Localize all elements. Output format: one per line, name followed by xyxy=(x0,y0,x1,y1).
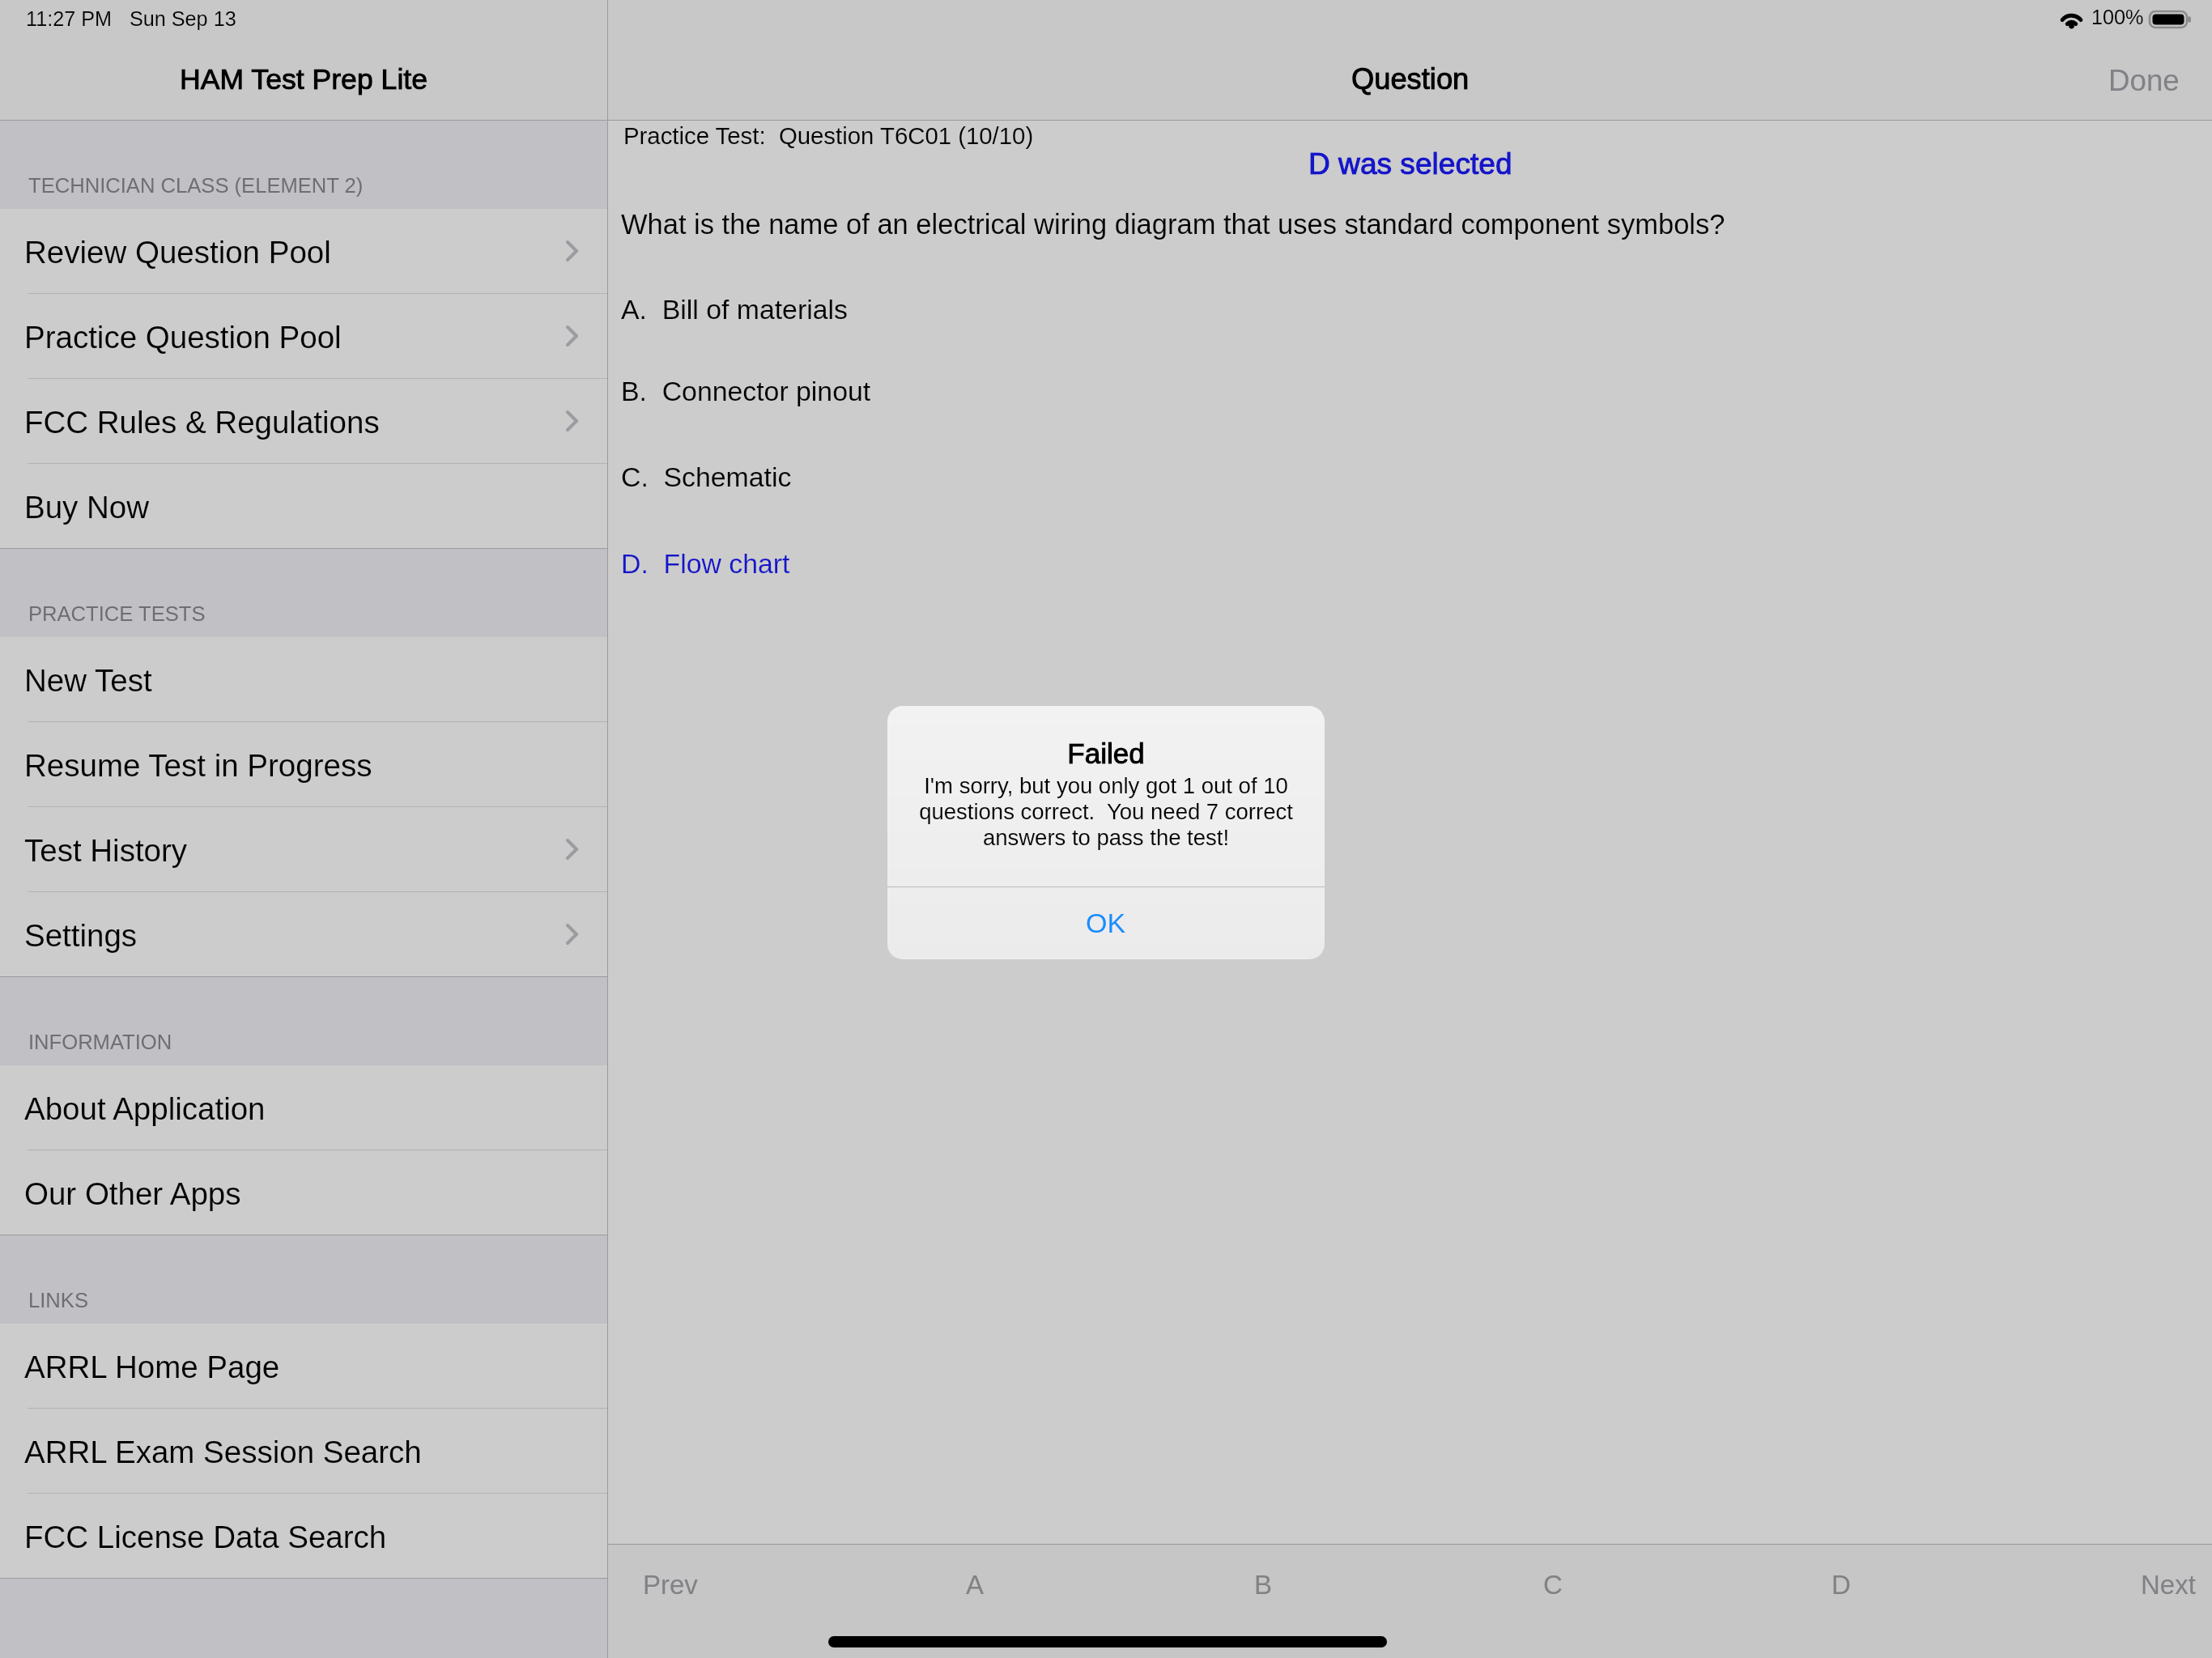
staticText: Prev xyxy=(643,1570,698,1600)
staticText: TECHNICIAN CLASS (ELEMENT 2) xyxy=(28,174,364,198)
staticText: Buy Now xyxy=(24,490,150,525)
button[interactable]: FCC License Data Search xyxy=(0,1494,607,1578)
staticText: About Application xyxy=(24,1091,266,1126)
staticText: I'm sorry, but you only got 1 out of 10 … xyxy=(905,773,1307,849)
staticText: A. Bill of materials xyxy=(621,294,848,325)
button[interactable]: C. Schematic xyxy=(608,460,805,494)
staticText: 100% xyxy=(2091,6,2144,28)
button[interactable]: Settings xyxy=(0,892,607,976)
button[interactable]: Practice Question Pool xyxy=(0,294,607,378)
staticText: B. Connector pinout xyxy=(621,376,871,406)
button[interactable]: Buy Now xyxy=(0,464,607,548)
staticText: FCC Rules & Regulations xyxy=(24,405,380,440)
button[interactable]: B. Connector pinout xyxy=(608,374,884,408)
button[interactable]: About Application xyxy=(0,1065,607,1150)
staticText: C xyxy=(1543,1570,1563,1600)
staticText: ARRL Home Page xyxy=(24,1350,280,1384)
staticText: What is the name of an electrical wiring… xyxy=(621,209,1725,240)
button[interactable]: D. Flow chart xyxy=(608,546,803,580)
button[interactable]: A xyxy=(948,1554,1002,1616)
staticText: Resume Test in Progress xyxy=(24,748,372,783)
button[interactable]: New Test xyxy=(0,637,607,721)
staticText: Practice Test: Question T6C01 (10/10) xyxy=(623,122,1034,149)
staticText: Settings xyxy=(24,918,138,953)
staticText: D was selected xyxy=(1308,147,1512,180)
staticText: PRACTICE TESTS xyxy=(28,602,206,626)
button[interactable]: Done xyxy=(2081,54,2212,107)
button[interactable]: B xyxy=(1236,1554,1291,1616)
button[interactable]: A. Bill of materials xyxy=(608,292,861,326)
other: Battery xyxy=(2149,11,2192,28)
button[interactable]: C xyxy=(1525,1554,1580,1616)
staticText: OK xyxy=(1086,908,1126,938)
staticText: C. Schematic xyxy=(621,461,792,492)
staticText: New Test xyxy=(24,663,152,698)
button[interactable]: OK xyxy=(887,886,1325,959)
button[interactable]: Our Other Apps xyxy=(0,1150,607,1235)
staticText: INFORMATION xyxy=(28,1031,172,1054)
staticText: FCC License Data Search xyxy=(24,1520,387,1554)
button[interactable]: FCC Rules & Regulations xyxy=(0,379,607,463)
staticText: Failed xyxy=(1067,738,1145,769)
staticText: Our Other Apps xyxy=(24,1176,241,1211)
staticText: Done xyxy=(2108,64,2180,97)
button[interactable]: Next xyxy=(2123,1554,2212,1616)
button[interactable]: Test History xyxy=(0,807,607,891)
other: Wi-Fi xyxy=(2061,11,2082,28)
staticText: HAM Test Prep Lite xyxy=(180,63,428,96)
button[interactable]: ARRL Exam Session Search xyxy=(0,1409,607,1493)
button[interactable]: Resume Test in Progress xyxy=(0,722,607,806)
button[interactable]: Prev xyxy=(625,1554,716,1616)
staticText: Next xyxy=(2141,1570,2196,1600)
staticText: Practice Question Pool xyxy=(24,320,342,355)
button[interactable]: ARRL Home Page xyxy=(0,1324,607,1408)
staticText: Question xyxy=(1351,62,1470,96)
staticText: D. Flow chart xyxy=(621,548,790,579)
button[interactable]: Review Question Pool xyxy=(0,209,607,293)
staticText: D xyxy=(1831,1570,1851,1600)
staticText: Review Question Pool xyxy=(24,235,331,270)
button[interactable]: D xyxy=(1814,1554,1869,1616)
staticText: LINKS xyxy=(28,1289,88,1312)
staticText: Sun Sep 13 xyxy=(130,7,236,30)
staticText: Test History xyxy=(24,833,188,868)
staticText: A xyxy=(966,1570,985,1600)
staticText: ARRL Exam Session Search xyxy=(24,1435,422,1469)
staticText: B xyxy=(1254,1570,1273,1600)
staticText: 11:27 PM xyxy=(26,7,112,30)
